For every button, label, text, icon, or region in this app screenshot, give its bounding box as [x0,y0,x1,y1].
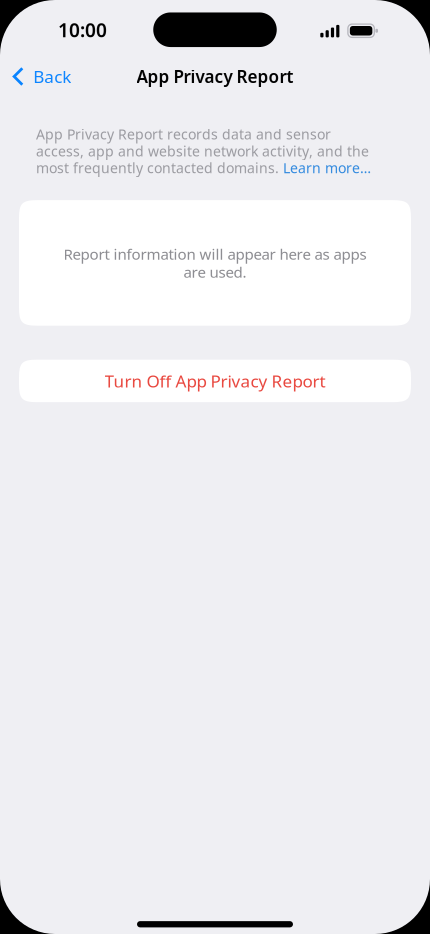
staticText: 10:00 [58,17,107,43]
staticText: App Privacy Report [136,65,293,88]
button[interactable]: Turn Off App Privacy Report [0,360,430,402]
button[interactable]: Back [0,54,112,98]
button[interactable]: App Privacy Report records data and sens… [36,124,381,177]
staticText: Back [33,65,71,88]
staticText: are used. [183,262,246,282]
staticText: App Privacy Report records data and sens… [36,124,371,177]
staticText: Turn Off App Privacy Report [104,369,325,392]
staticText: Report information will appear here as a… [63,244,366,264]
